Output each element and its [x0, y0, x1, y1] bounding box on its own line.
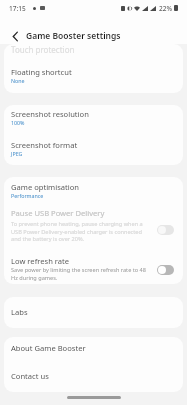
button[interactable]: Low refresh rate [4, 252, 183, 284]
button[interactable]: Pause USB Power Delivery [4, 207, 183, 247]
staticText: 100% [11, 119, 25, 126]
staticText: None [11, 77, 25, 84]
staticText: Contact us [11, 371, 49, 381]
staticText: Low refresh rate [11, 256, 70, 266]
button[interactable]: Toggle switch [157, 265, 174, 275]
staticText: Game optimisation [11, 182, 80, 192]
staticText: To prevent phone heating, pause charging… [11, 220, 151, 242]
staticText: Screenshot resolution [11, 109, 89, 119]
staticText: 22% [159, 4, 172, 13]
staticText: Game Booster settings [26, 30, 121, 42]
button[interactable]: Labs [4, 297, 183, 328]
staticText: Labs [11, 307, 28, 317]
button[interactable]: Contact us [4, 365, 183, 392]
staticText: JPEG [11, 150, 23, 157]
button[interactable]: Game optimisation [4, 177, 183, 205]
staticText: Touch protection [11, 44, 75, 55]
button[interactable]: About Game Booster [4, 337, 183, 364]
staticText: Save power by limiting the screen refres… [11, 266, 149, 281]
button[interactable]: Screenshot format [4, 136, 183, 165]
button[interactable]: Toggle switch [157, 225, 174, 235]
button[interactable]: Floating shortcut [4, 64, 183, 93]
button[interactable]: Screenshot resolution [4, 105, 183, 135]
staticText: Screenshot format [11, 140, 78, 150]
staticText: Performance [11, 192, 44, 199]
staticText: About Game Booster [11, 343, 86, 353]
button[interactable]: Navigate up [6, 27, 24, 45]
staticText: Floating shortcut [11, 67, 72, 77]
staticText: 17:15 [9, 4, 26, 13]
staticText: Pause USB Power Delivery [11, 208, 105, 218]
